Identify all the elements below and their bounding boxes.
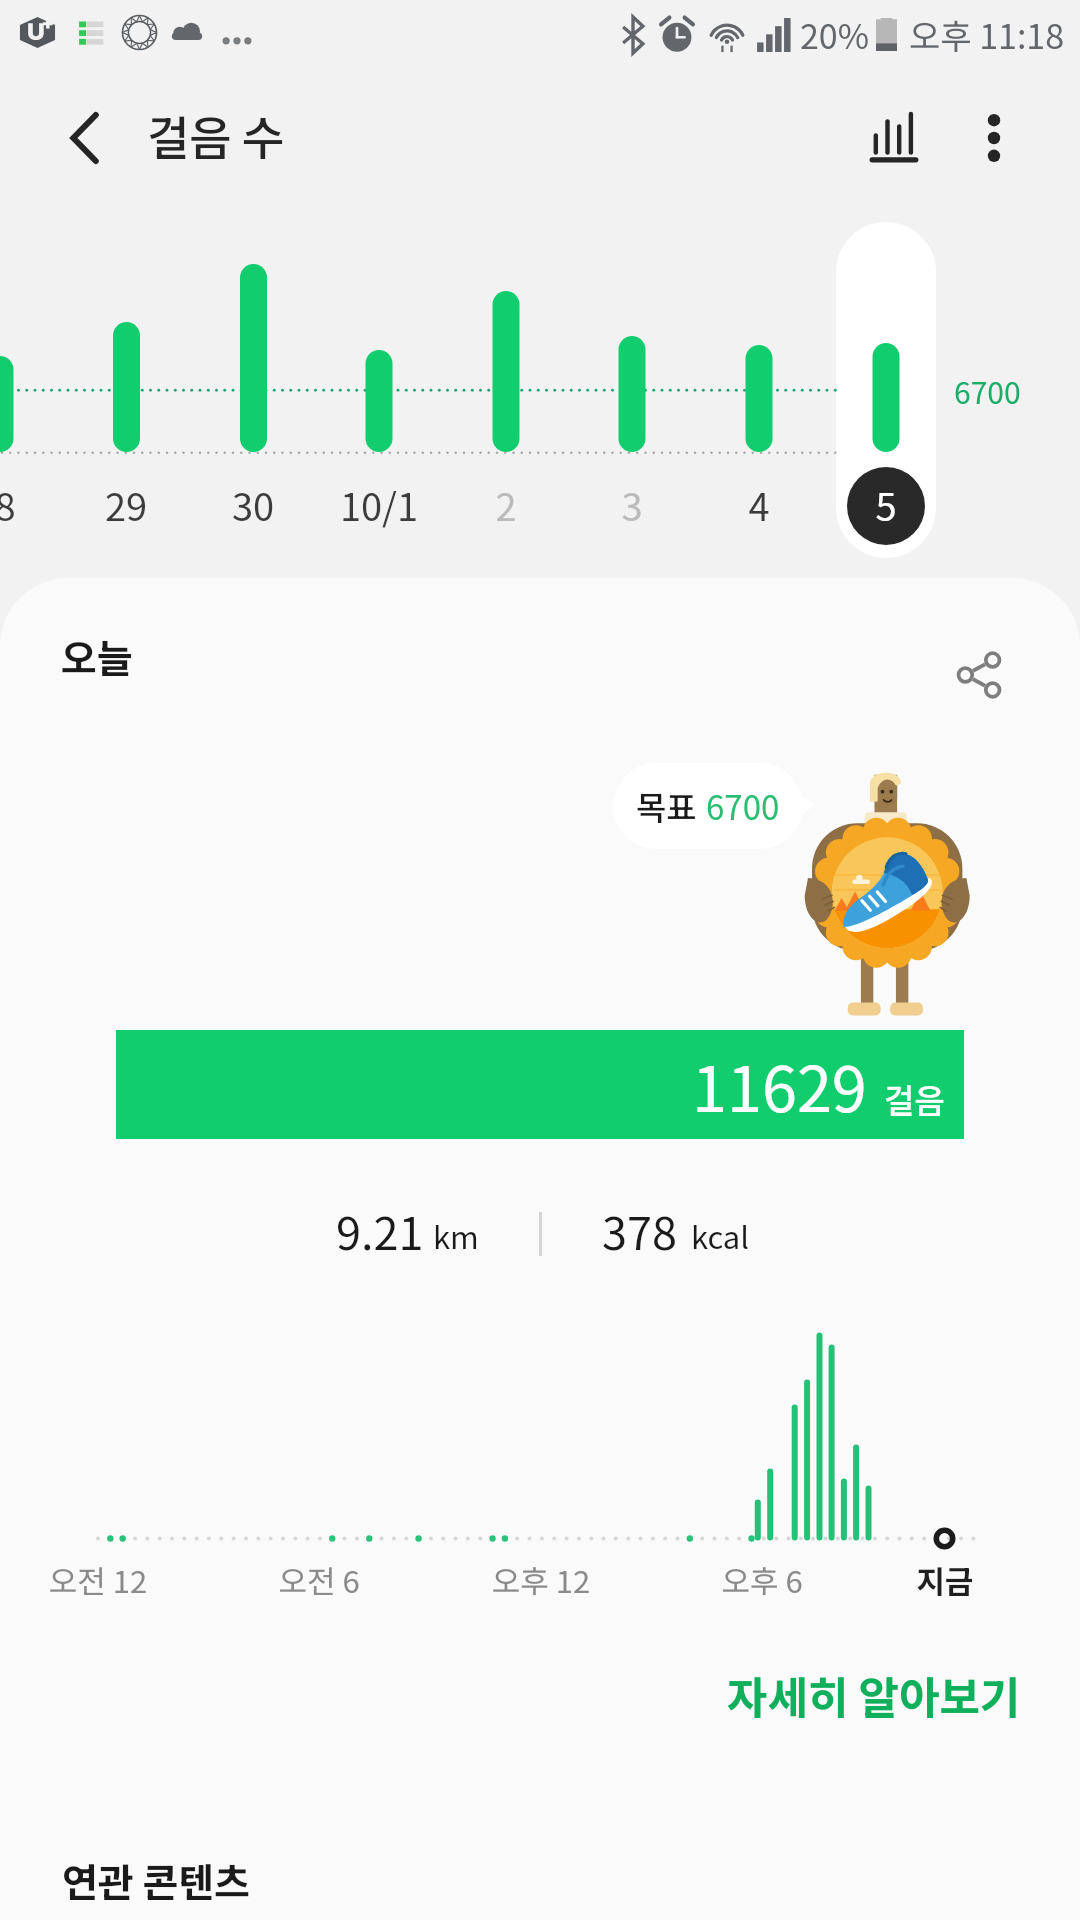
- button[interactable]: Day 4: [709, 222, 809, 558]
- staticText: 2: [426, 477, 586, 532]
- staticText: 목표: [636, 782, 697, 830]
- button[interactable]: Day 29: [76, 222, 176, 558]
- button[interactable]: Back: [28, 82, 140, 194]
- button[interactable]: Day 5: [836, 222, 936, 558]
- staticText: 9.21: [336, 1198, 424, 1263]
- button[interactable]: Chart view: [838, 82, 950, 194]
- button[interactable]: Day 3: [582, 222, 682, 558]
- staticText: 30: [173, 477, 333, 532]
- staticText: 걸음 수: [147, 102, 285, 169]
- button[interactable]: Day 30: [203, 222, 303, 558]
- staticText: 10/1: [299, 477, 459, 532]
- staticText: 오후 6: [642, 1557, 882, 1602]
- button[interactable]: Day 8: [0, 222, 50, 558]
- button[interactable]: 연관 콘텐츠: [44, 1842, 284, 1918]
- staticText: 오전 12: [0, 1557, 218, 1602]
- staticText: 6700: [706, 782, 780, 830]
- staticText: 오늘: [61, 628, 133, 684]
- staticText: 자세히 알아보기: [727, 1663, 1021, 1727]
- staticText: 연관 콘텐츠: [62, 1852, 251, 1908]
- button[interactable]: More options: [938, 82, 1050, 194]
- staticText: km: [433, 1213, 479, 1258]
- button[interactable]: Day 10/1: [329, 222, 429, 558]
- staticText: 4: [679, 477, 839, 532]
- staticText: 오후 12: [421, 1557, 661, 1602]
- staticText: 5: [806, 477, 966, 532]
- button[interactable]: Share: [931, 627, 1027, 723]
- staticText: kcal: [691, 1213, 750, 1258]
- staticText: 오전 6: [199, 1557, 439, 1602]
- staticText: 20%: [800, 10, 870, 59]
- button[interactable]: 자세히 알아보기: [703, 1649, 1045, 1741]
- staticText: 8: [0, 477, 85, 532]
- staticText: 오후 11:18: [909, 10, 1065, 59]
- staticText: 3: [552, 477, 712, 532]
- button[interactable]: 11629: [116, 1030, 964, 1139]
- button[interactable]: Day 2: [456, 222, 556, 558]
- staticText: 걸음: [884, 1075, 945, 1123]
- staticText: 지금: [825, 1557, 1065, 1602]
- staticText: 6700: [954, 369, 1021, 412]
- staticText: 29: [46, 477, 206, 532]
- staticText: 378: [602, 1198, 677, 1263]
- staticText: 11629: [692, 1039, 867, 1130]
